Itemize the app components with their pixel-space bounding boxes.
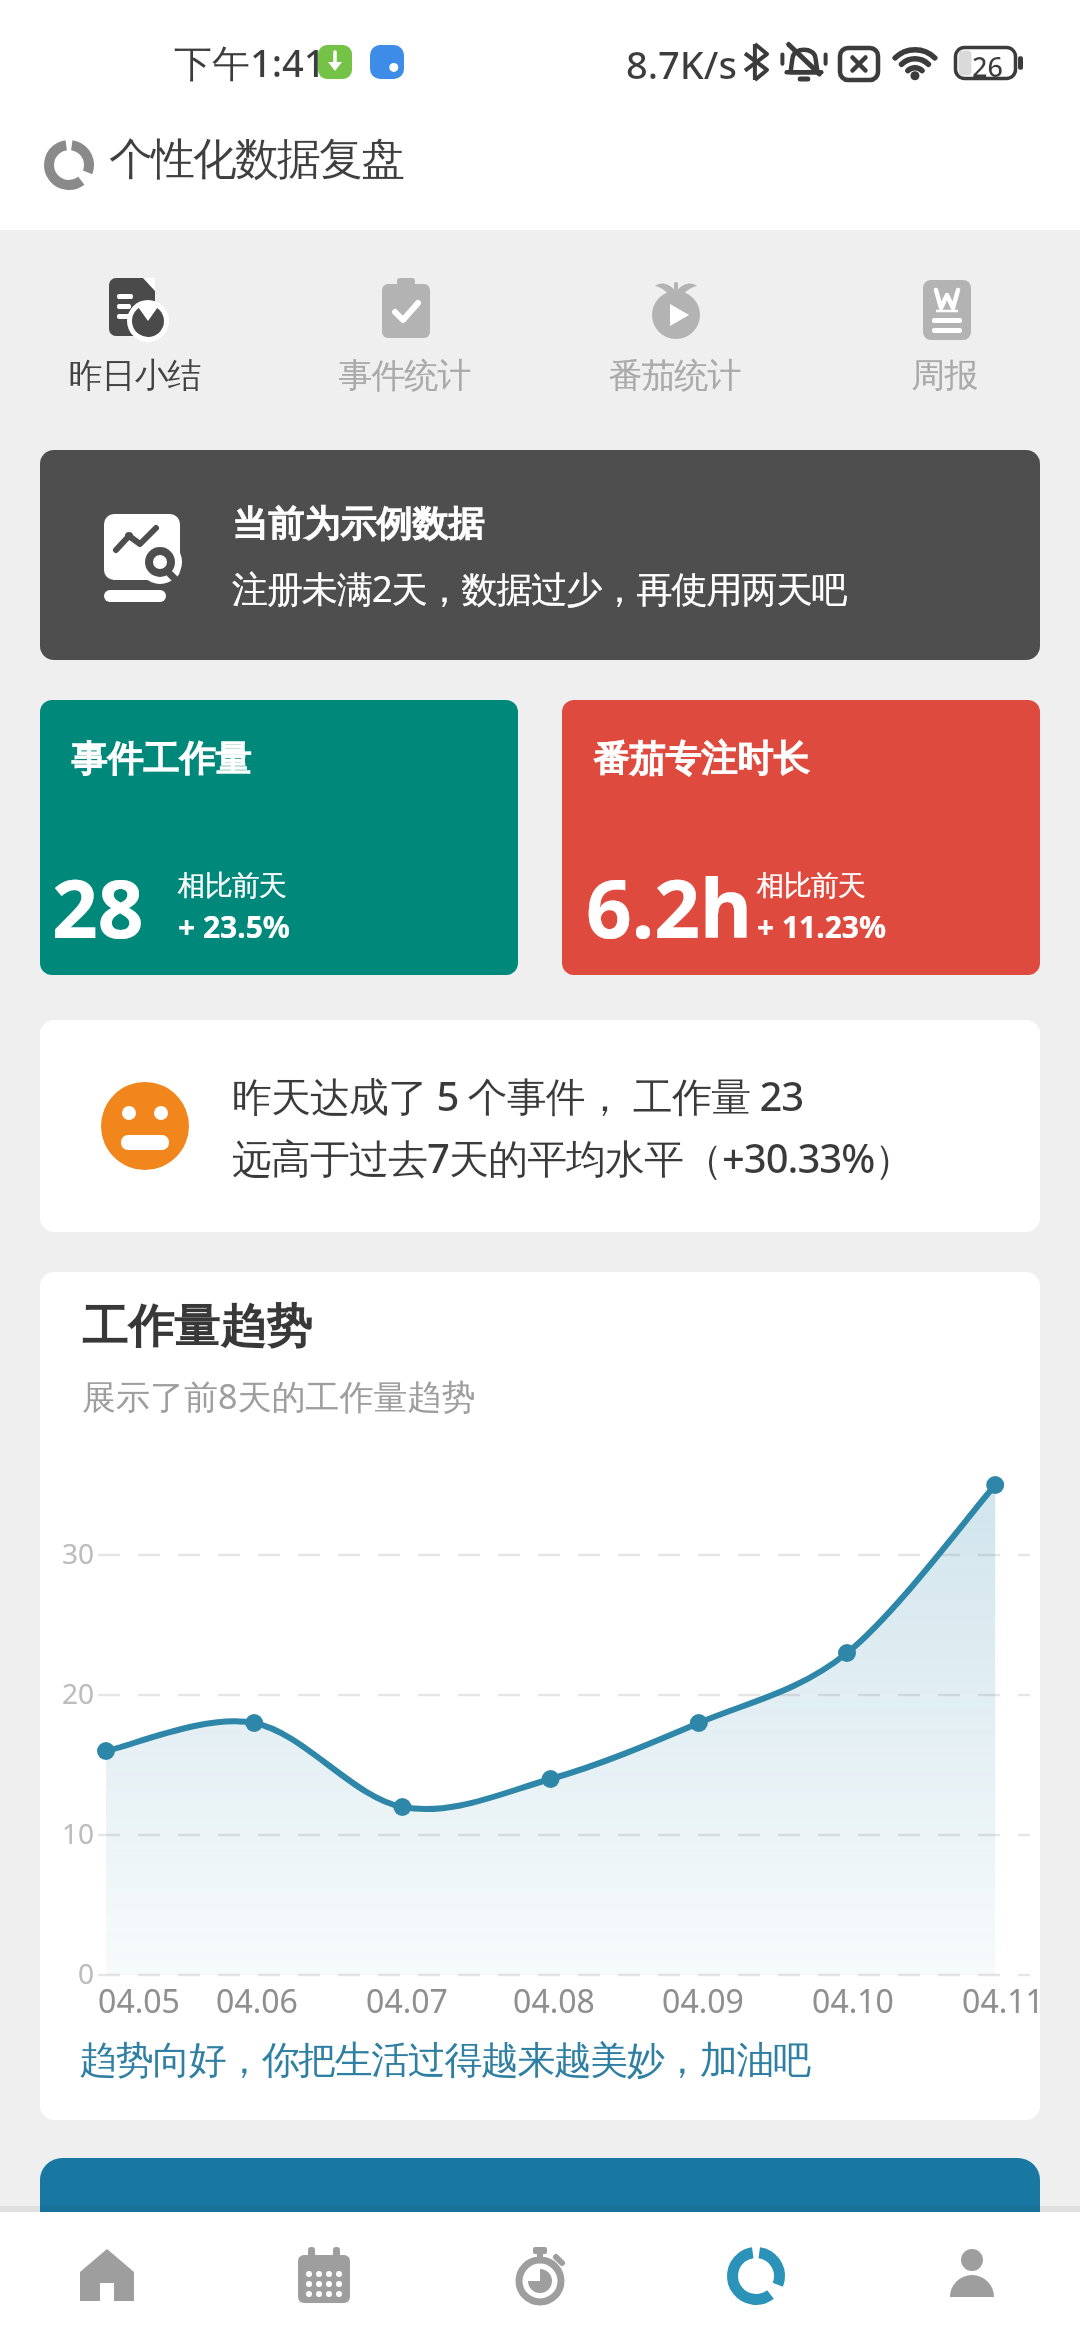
staticText: 30 bbox=[43, 1534, 94, 1572]
staticText: 昨日小结 bbox=[69, 354, 201, 397]
staticText: 事件统计 bbox=[339, 354, 471, 397]
staticText: 10 bbox=[43, 1814, 94, 1852]
button[interactable] bbox=[864, 2212, 1080, 2340]
staticText: 下午1:41 bbox=[174, 36, 326, 88]
staticText: 6.2h bbox=[586, 852, 752, 961]
staticText: 番茄统计 bbox=[609, 354, 741, 397]
staticText: 事件工作量 bbox=[71, 736, 251, 781]
staticText: 当前为示例数据 bbox=[232, 501, 484, 546]
staticText: 28 bbox=[52, 852, 144, 961]
staticText: 8.7K/s bbox=[626, 38, 737, 90]
button[interactable] bbox=[648, 2212, 864, 2340]
staticText: 趋势向好，你把生活过得越来越美妙，加油吧 bbox=[80, 2036, 810, 2084]
button[interactable]: 当前为示例数据 bbox=[40, 450, 1040, 660]
button[interactable] bbox=[216, 2212, 432, 2340]
staticText: 04.09 bbox=[653, 1979, 753, 2023]
button[interactable]: 番茄统计 bbox=[540, 278, 810, 428]
staticText: 04.06 bbox=[207, 1979, 307, 2023]
staticText: + 11.23% bbox=[757, 906, 887, 947]
button[interactable] bbox=[0, 2212, 216, 2340]
staticText: 工作量趋势 bbox=[82, 1298, 312, 1356]
staticText: 04.11 bbox=[953, 1979, 1040, 2023]
staticText: 远高于过去7天的平均水平（+30.33%） bbox=[232, 1130, 914, 1185]
staticText: 04.05 bbox=[89, 1979, 189, 2023]
button[interactable] bbox=[432, 2212, 648, 2340]
staticText: 04.07 bbox=[357, 1979, 457, 2023]
button[interactable]: 事件统计 bbox=[270, 278, 540, 428]
staticText: 26 bbox=[972, 48, 1003, 85]
staticText: 04.08 bbox=[504, 1979, 604, 2023]
staticText: 注册未满2天，数据过少，再使用两天吧 bbox=[232, 564, 847, 613]
staticText: + 23.5% bbox=[178, 906, 290, 947]
staticText: 0 bbox=[43, 1954, 94, 1992]
button[interactable]: 事件工作量 bbox=[40, 700, 518, 975]
button[interactable]: 番茄专注时长 bbox=[562, 700, 1040, 975]
staticText: 个性化数据复盘 bbox=[110, 132, 404, 187]
staticText: 展示了前8天的工作量趋势 bbox=[82, 1373, 476, 1419]
staticText: 番茄专注时长 bbox=[593, 736, 809, 781]
button[interactable]: 昨日小结 bbox=[0, 278, 270, 428]
staticText: 相比前天 bbox=[178, 868, 286, 903]
staticText: 昨天达成了 5 个事件， 工作量 23 bbox=[232, 1068, 804, 1123]
staticText: 相比前天 bbox=[757, 868, 865, 903]
staticText: 20 bbox=[43, 1674, 94, 1712]
button[interactable]: 周报 bbox=[810, 278, 1080, 428]
staticText: 周报 bbox=[912, 354, 978, 397]
button[interactable]: 昨天达成了 5 个事件， 工作量 23 bbox=[40, 1020, 1040, 1232]
staticText: 04.10 bbox=[803, 1979, 903, 2023]
